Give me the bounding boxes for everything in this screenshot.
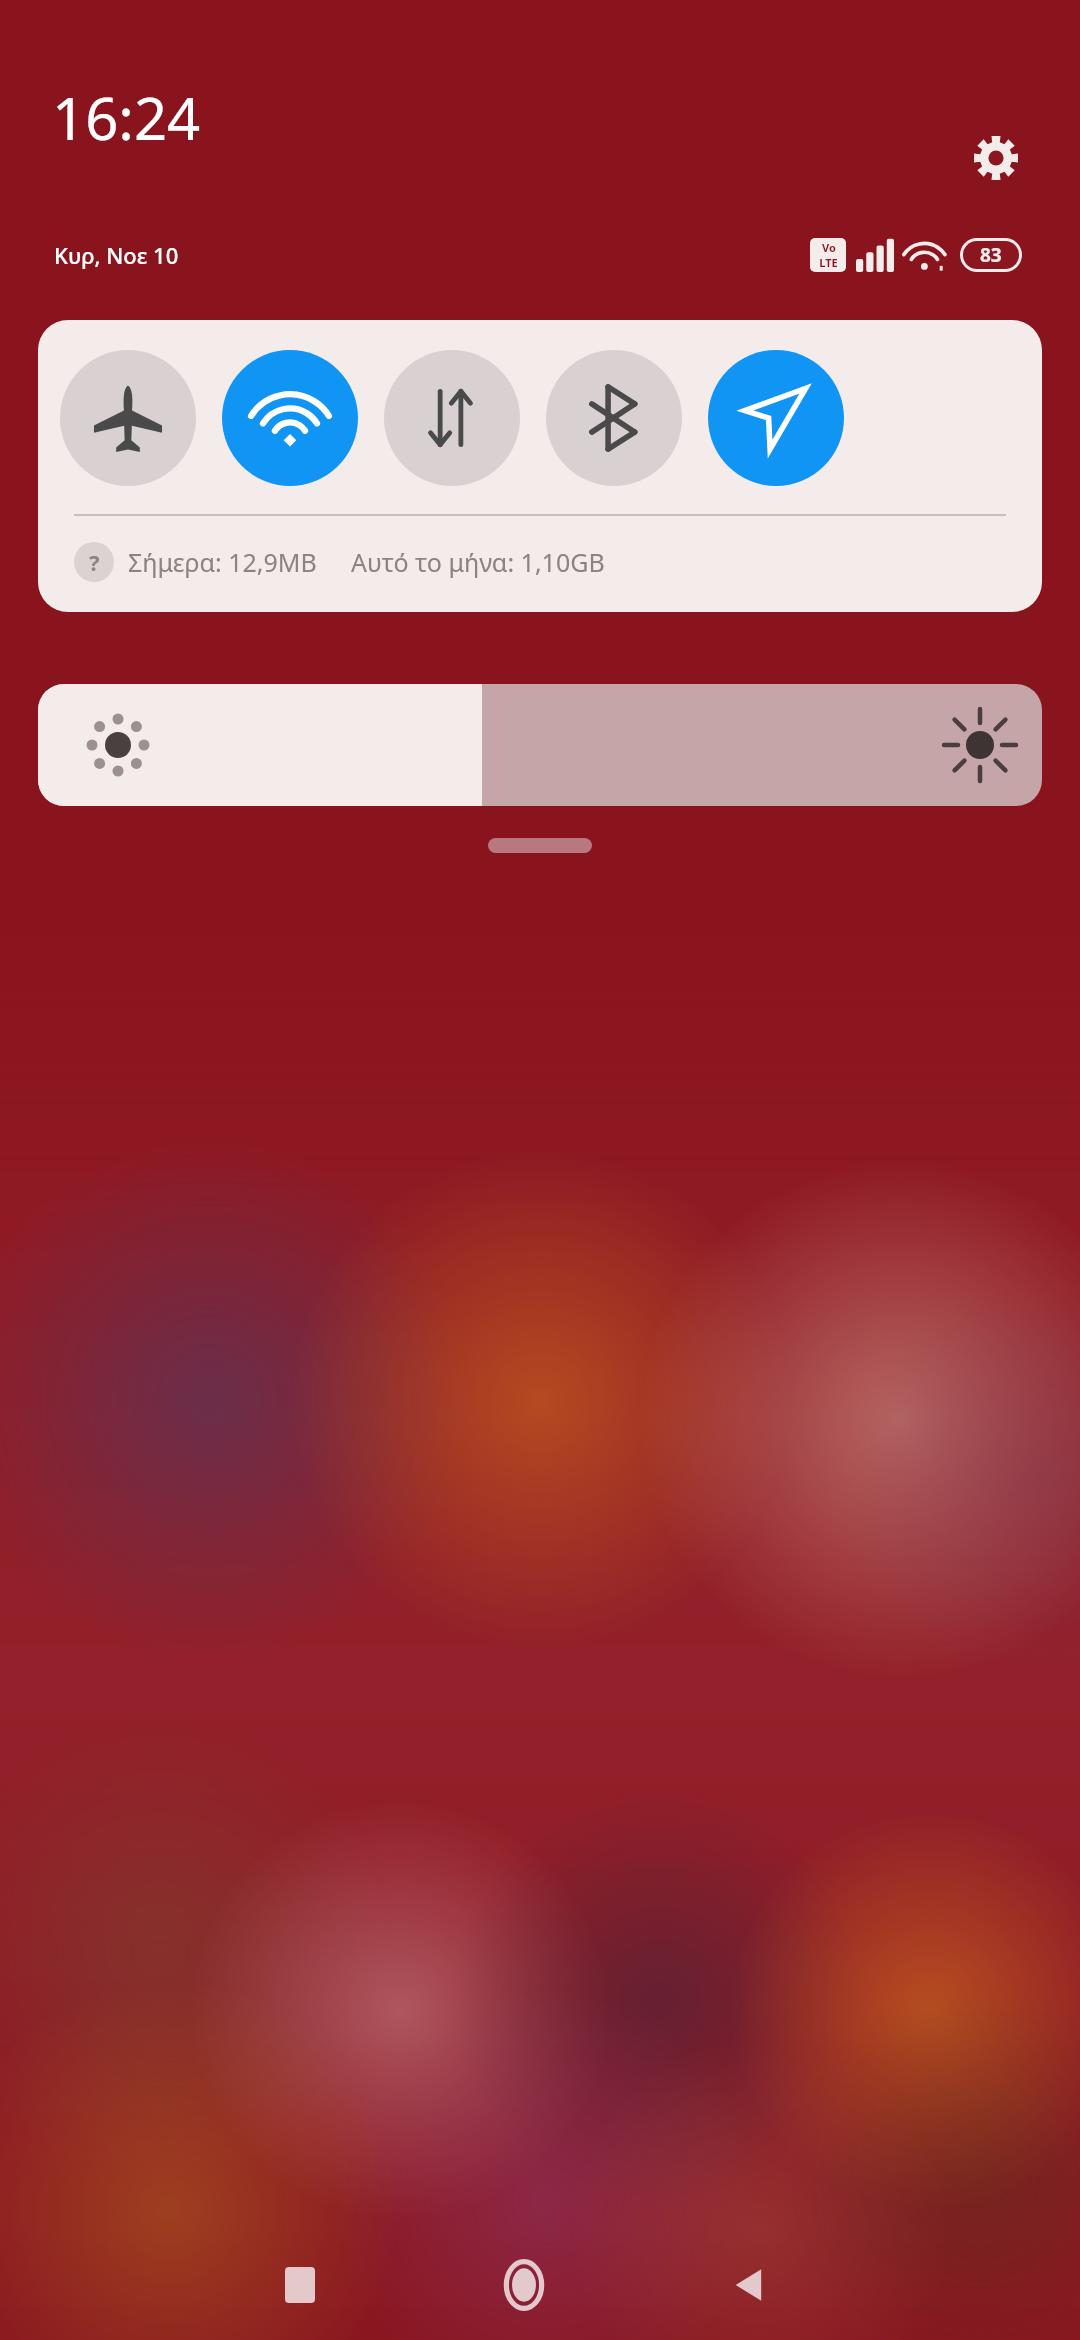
button[interactable]: Home — [482, 2243, 566, 2327]
button[interactable]: Recents — [258, 2243, 342, 2327]
staticText: Vo — [822, 240, 836, 255]
staticText: Αυτό το μήνα: 1,10GB — [351, 545, 605, 579]
staticText: Σήμερα: 12,9MB — [128, 545, 317, 579]
button[interactable]: Quick setting toggle — [546, 350, 682, 486]
button[interactable]: Back — [706, 2243, 790, 2327]
button[interactable]: Quick setting toggle — [708, 350, 844, 486]
button[interactable]: Quick setting toggle — [384, 350, 520, 486]
button[interactable]: Quick setting toggle — [60, 350, 196, 486]
button[interactable]: Settings — [968, 130, 1024, 186]
staticText: Κυρ, Νοε 10 — [54, 240, 179, 270]
button[interactable]: Brightness — [38, 684, 1042, 806]
staticText: 16:24 — [52, 78, 201, 157]
staticText: ? — [89, 547, 100, 577]
staticText: LTE — [819, 255, 838, 270]
button[interactable]: Quick setting toggle — [222, 350, 358, 486]
button[interactable]: Expand — [488, 838, 592, 853]
button[interactable]: Help — [74, 542, 114, 582]
staticText: 83 — [980, 242, 1002, 268]
